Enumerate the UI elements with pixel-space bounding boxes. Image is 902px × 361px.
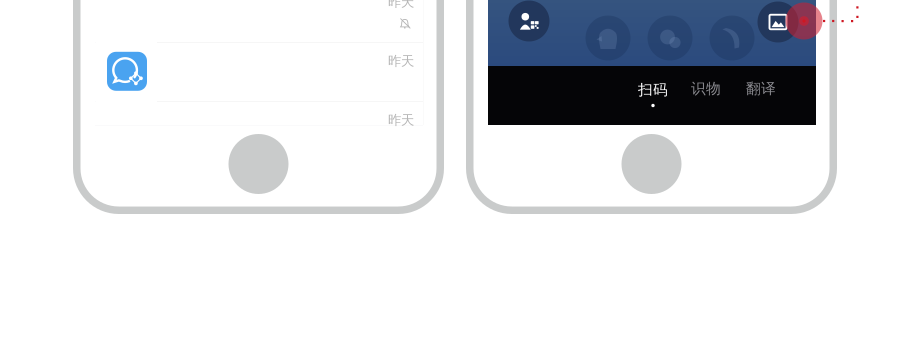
button[interactable]: 昨天: [95, 42, 423, 101]
staticText: 扫码: [638, 81, 668, 99]
button[interactable]: 识物: [684, 75, 728, 103]
staticText: 昨天: [388, 53, 414, 69]
button[interactable]: Photo library: [757, 1, 798, 42]
staticText: 昨天: [388, 0, 414, 10]
button[interactable]: My QR code: [508, 0, 549, 41]
button[interactable]: 昨天: [95, 102, 423, 125]
staticText: 昨天: [388, 112, 414, 128]
staticText: 识物: [691, 80, 721, 98]
button[interactable]: 昨天: [95, 0, 423, 42]
button[interactable]: 翻译: [739, 75, 783, 103]
button[interactable]: 扫码: [631, 77, 675, 111]
staticText: 翻译: [746, 80, 776, 98]
